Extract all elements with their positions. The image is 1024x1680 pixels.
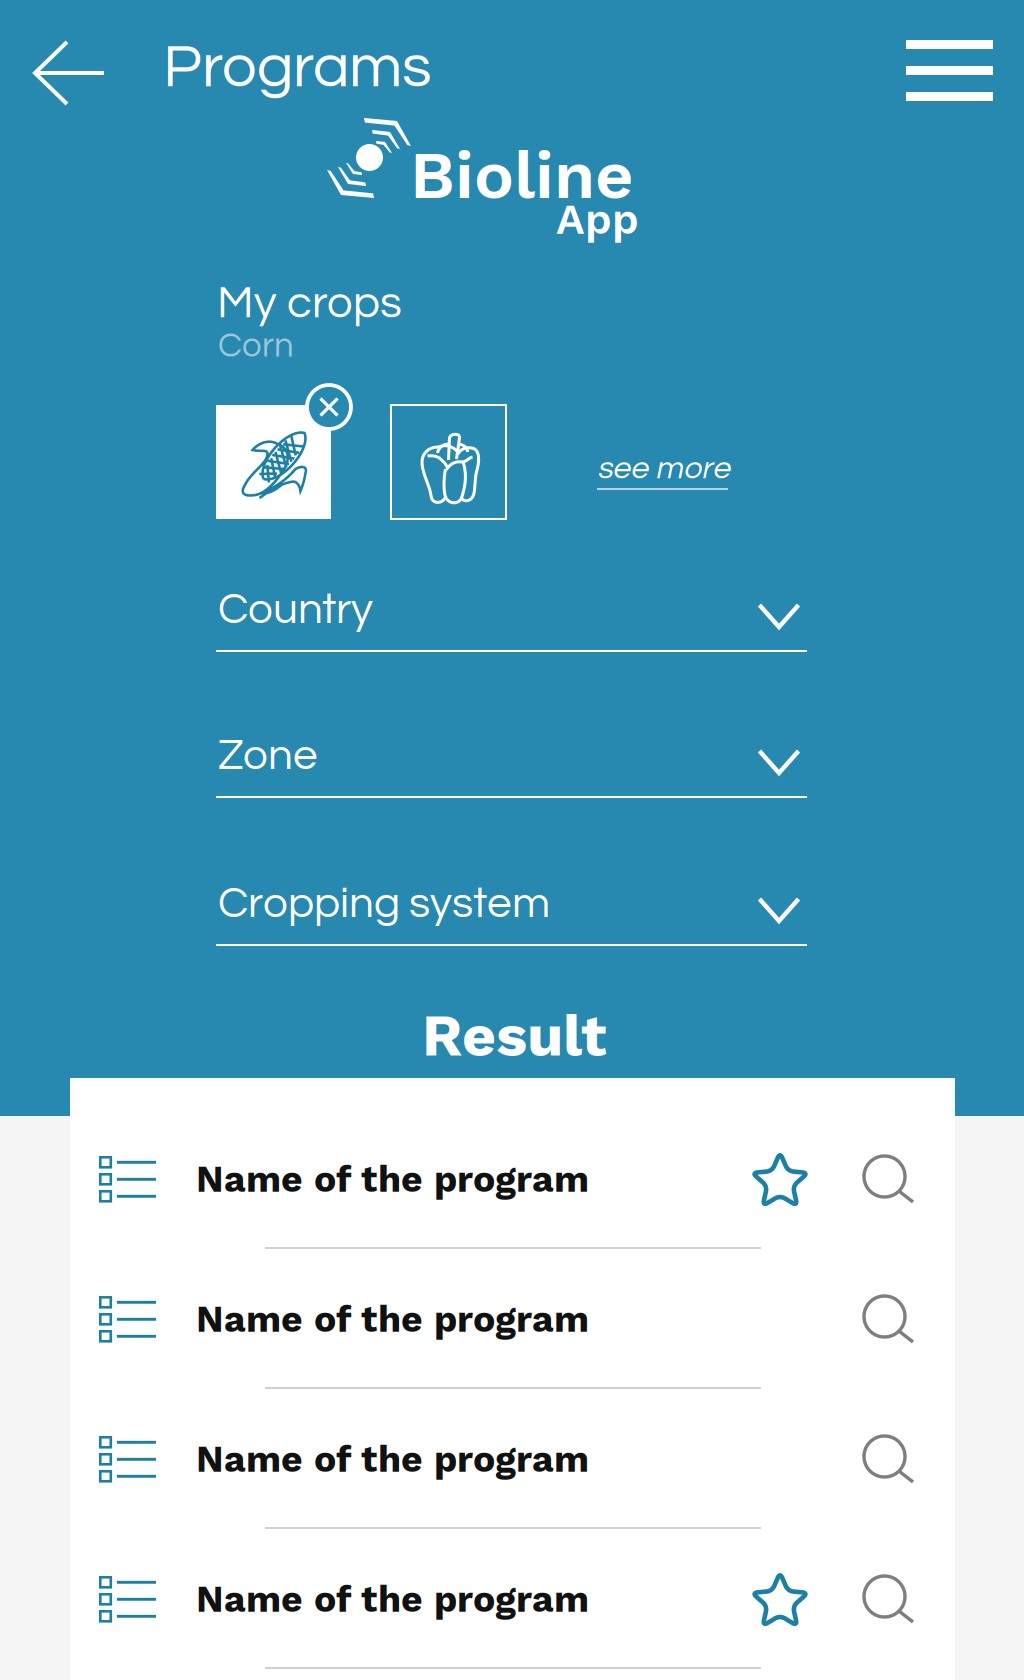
staticText: Cropping system [218,881,550,926]
button[interactable]: Name of the program [70,1576,955,1680]
staticText: Name of the program [196,1157,589,1201]
button[interactable]: Menu [884,18,1015,123]
staticText: My crops [217,280,402,327]
staticText: App [556,194,639,244]
button[interactable]: Cropping system [216,888,806,958]
button[interactable]: Back [12,20,126,126]
staticText: see more [597,452,730,485]
button[interactable]: Programs [149,20,446,115]
button[interactable]: Zone [216,740,806,810]
button[interactable]: Name of the program [70,1156,955,1296]
button[interactable]: Country [216,594,806,664]
staticText: Name of the program [196,1297,589,1341]
button[interactable]: Pepper [391,382,529,519]
staticText: Bioline [410,136,634,214]
button[interactable]: see more [581,436,745,516]
staticText: Result [422,1001,607,1070]
staticText: Programs [163,36,432,99]
button[interactable]: Corn, selected [216,382,354,519]
button[interactable]: Name of the program [70,1436,955,1576]
button[interactable]: Name of the program [70,1296,955,1436]
staticText: Country [218,587,373,632]
staticText: Name of the program [196,1577,589,1621]
staticText: Name of the program [196,1437,589,1481]
staticText: Corn [218,328,294,364]
staticText: Zone [218,733,318,778]
